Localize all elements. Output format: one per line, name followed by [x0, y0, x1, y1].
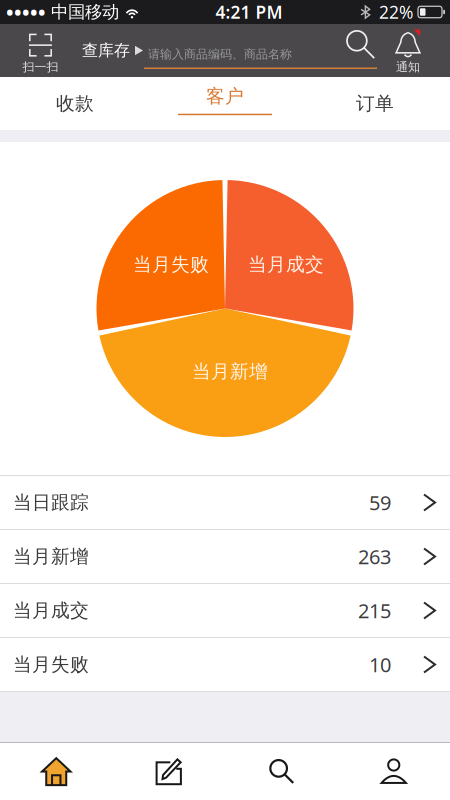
staticText: 59 — [369, 489, 391, 516]
button[interactable]: 当日跟踪 — [0, 476, 450, 530]
button[interactable]: 扫一扫 — [0, 24, 81, 77]
staticText: 263 — [358, 543, 391, 570]
button[interactable]: 搜索 — [334, 24, 386, 77]
staticText: 当月成交 — [248, 253, 324, 276]
staticText: 查库存 — [82, 41, 130, 60]
staticText: 当月成交 — [13, 599, 89, 622]
button[interactable]: 当月新增 — [0, 530, 450, 584]
staticText: 扫一扫 — [22, 60, 58, 74]
staticText: 当月新增 — [13, 545, 89, 568]
staticText: 订单 — [356, 92, 394, 115]
button[interactable]: 我的 — [337, 743, 450, 800]
staticText: ••••• — [6, 0, 46, 25]
button[interactable]: 开单 — [112, 743, 225, 800]
staticText: 215 — [358, 597, 391, 624]
button[interactable]: 查库存 — [81, 24, 144, 77]
button[interactable]: 订单 — [300, 77, 450, 130]
staticText: 客户 — [206, 85, 244, 108]
staticText: 4:21 PM — [215, 0, 282, 23]
staticText: 10 — [369, 651, 391, 678]
staticText: 当日跟踪 — [13, 491, 89, 514]
button[interactable]: 客户 — [150, 77, 300, 130]
staticText: 当月新增 — [192, 360, 268, 383]
button[interactable]: 首页 — [0, 743, 112, 800]
staticText: 当月失败 — [13, 653, 89, 676]
button[interactable]: 当月成交 — [0, 584, 450, 638]
staticText: 22% — [379, 0, 413, 23]
button[interactable]: 收款 — [0, 77, 150, 130]
button[interactable]: 当月失败 — [0, 638, 450, 692]
staticText: 通知 — [396, 60, 420, 74]
button[interactable]: 查询 — [225, 743, 337, 800]
staticText: 请输入商品编码、商品名称 — [148, 47, 292, 61]
staticText: 中国移动 — [46, 1, 119, 23]
staticText: 当月失败 — [133, 253, 209, 276]
button[interactable]: 通知 — [386, 24, 430, 77]
staticText: 收款 — [56, 92, 94, 115]
